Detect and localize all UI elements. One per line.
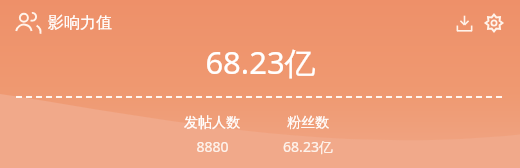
staticText: 粉丝数: [287, 114, 329, 132]
staticText: 8880: [196, 137, 229, 156]
staticText: 68.23亿: [283, 137, 333, 156]
staticText: 发帖人数: [184, 114, 240, 132]
button[interactable]: 影响力值: [14, 10, 112, 36]
staticText: 68.23亿: [205, 41, 316, 83]
button[interactable]: 粉丝数: [272, 114, 344, 156]
staticText: 影响力值: [48, 13, 112, 33]
button[interactable]: Settings: [480, 9, 508, 37]
button[interactable]: 发帖人数: [176, 114, 248, 156]
button[interactable]: Download: [450, 9, 478, 37]
